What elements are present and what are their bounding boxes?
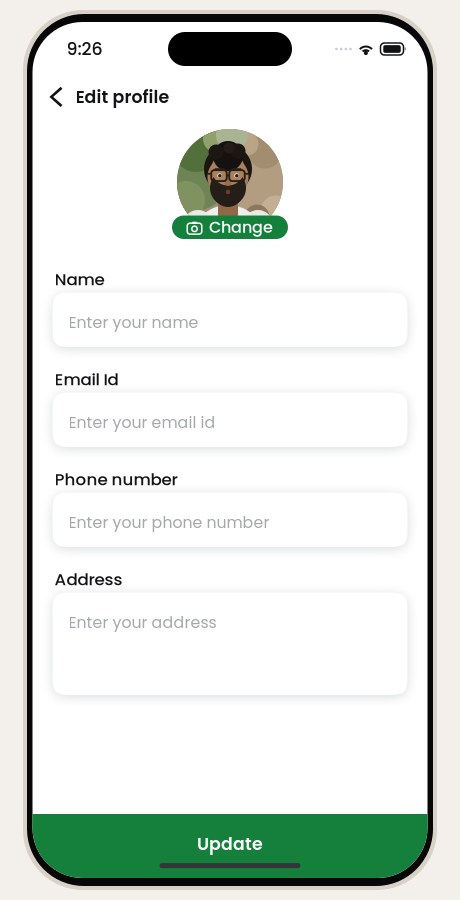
staticText: Change: [209, 216, 273, 238]
staticText: Edit profile: [75, 85, 169, 109]
staticText: Enter your address: [68, 611, 216, 633]
button[interactable]: Enter your name: [52, 292, 407, 347]
staticText: Enter your phone number: [68, 511, 269, 533]
staticText: Address: [54, 568, 122, 591]
staticText: Email Id: [54, 368, 118, 391]
staticText: Update: [197, 832, 263, 856]
staticText: Name: [54, 268, 104, 291]
staticText: Enter your email id: [68, 411, 215, 433]
button[interactable]: Update: [32, 814, 427, 878]
button[interactable]: Back: [43, 82, 67, 112]
staticText: Enter your name: [68, 311, 198, 333]
button[interactable]: Change: [172, 215, 288, 239]
button[interactable]: Enter your address: [52, 592, 407, 695]
staticText: 9:26: [66, 37, 102, 61]
button[interactable]: Enter your email id: [52, 392, 407, 447]
button[interactable]: Enter your phone number: [52, 492, 407, 547]
staticText: Phone number: [54, 468, 177, 491]
